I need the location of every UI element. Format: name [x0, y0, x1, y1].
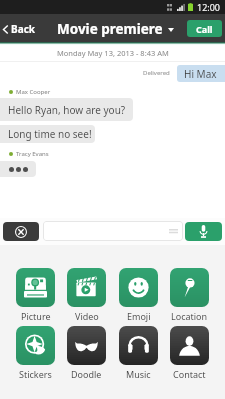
- staticText: Call: [196, 23, 213, 35]
- staticText: Stickers: [19, 368, 52, 380]
- staticText: Tracy Evans: [16, 150, 49, 158]
- button[interactable]: Record voice message: [185, 222, 222, 241]
- staticText: Delivered: [143, 69, 170, 77]
- button[interactable]: Emoji: [119, 268, 158, 307]
- staticText: Location: [171, 310, 208, 322]
- staticText: Doodle: [71, 368, 102, 380]
- button[interactable]: Close panel: [3, 222, 39, 241]
- button[interactable]: Doodle: [67, 326, 106, 365]
- staticText: Movie premiere: [57, 20, 163, 38]
- button[interactable]: Call: [187, 20, 222, 37]
- staticText: Max Cooper: [16, 88, 51, 96]
- staticText: Music: [126, 368, 151, 380]
- staticText: 12:00: [197, 1, 221, 13]
- staticText: Video: [75, 310, 99, 322]
- staticText: Back: [11, 22, 35, 36]
- staticText: Emoji: [127, 310, 151, 322]
- button[interactable]: Video: [67, 268, 106, 307]
- button[interactable]: [43, 221, 183, 241]
- staticText: Contact: [173, 368, 206, 380]
- button[interactable]: Contact: [170, 326, 209, 365]
- button[interactable]: Back: [0, 17, 41, 41]
- button[interactable]: Music: [119, 326, 158, 365]
- button[interactable]: Stickers: [16, 326, 55, 365]
- button[interactable]: Picture: [16, 268, 55, 307]
- staticText: Long time no see!: [8, 127, 92, 141]
- button[interactable]: Location: [170, 268, 209, 307]
- staticText: Hi Max: [184, 67, 217, 81]
- staticText: Hello Ryan, how are you?: [8, 103, 126, 117]
- staticText: Picture: [21, 310, 51, 322]
- staticText: Monday May 13, 2013 - 8:43 AM: [57, 48, 169, 58]
